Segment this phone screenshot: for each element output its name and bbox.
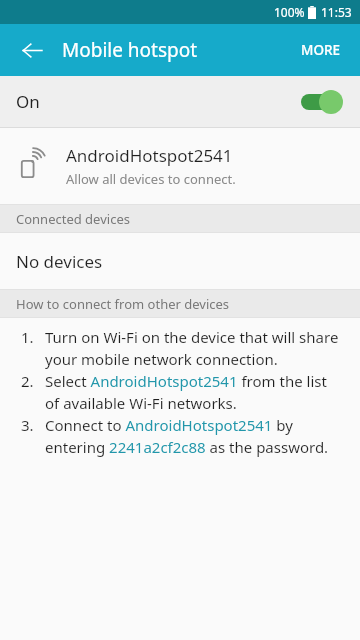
staticText: 3. (21, 415, 34, 435)
staticText: Mobile hotspot (62, 37, 198, 63)
button[interactable]: MORE (281, 24, 360, 76)
staticText: Turn on Wi-Fi on the device that will sh… (45, 327, 344, 370)
staticText: AndroidHotspot2541 (66, 144, 233, 167)
staticText: Connect to AndroidHotspot2541 by enterin… (45, 415, 344, 458)
button[interactable]: On (0, 76, 360, 127)
button[interactable]: Hotspot on (298, 89, 344, 115)
button[interactable]: No devices (0, 233, 360, 289)
staticText: On (16, 90, 40, 113)
staticText: 1. (21, 327, 34, 347)
button[interactable]: AndroidHotspot2541 (0, 128, 360, 204)
staticText: Connected devices (16, 210, 130, 228)
staticText: No devices (16, 250, 103, 273)
staticText: 2. (21, 371, 34, 391)
staticText: MORE (301, 41, 341, 59)
staticText: 100% (274, 4, 305, 20)
staticText: How to connect from other devices (16, 295, 230, 313)
staticText: Select AndroidHotspot2541 from the list … (45, 371, 344, 414)
staticText: Allow all devices to connect. (66, 170, 236, 188)
staticText: 11:53 (321, 4, 352, 20)
button[interactable]: Back (16, 34, 48, 66)
